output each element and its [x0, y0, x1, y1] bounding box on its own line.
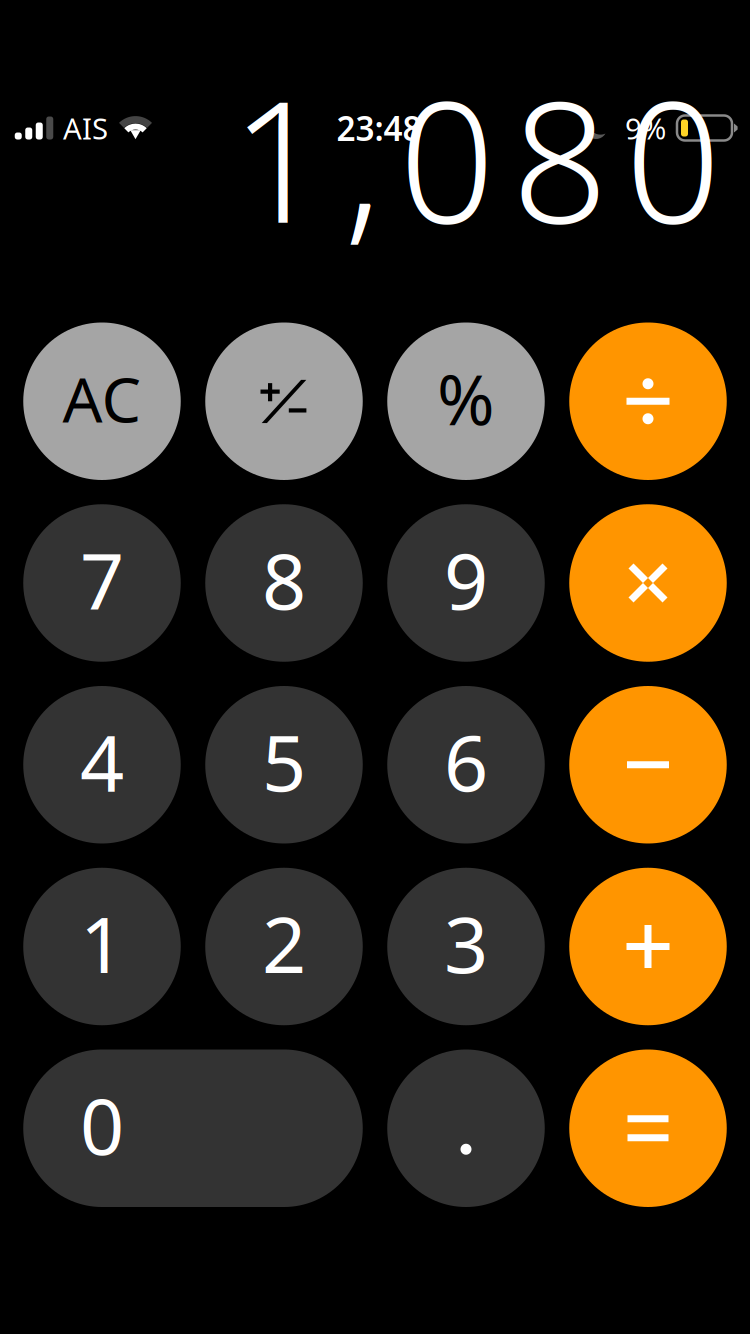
staticText: 4: [80, 710, 124, 813]
staticText: AC: [62, 357, 141, 440]
button[interactable]: 4: [23, 686, 181, 843]
button[interactable]: %: [387, 322, 545, 480]
staticText: AIS: [63, 108, 108, 147]
staticText: 8: [262, 528, 306, 631]
button[interactable]: 9: [387, 504, 545, 662]
staticText: 9%: [625, 108, 666, 147]
staticText: 7: [80, 528, 124, 631]
button[interactable]: 3: [387, 868, 545, 1025]
staticText: 3: [444, 892, 488, 994]
button[interactable]: 7: [23, 504, 181, 662]
staticText: 23:48: [336, 106, 421, 150]
staticText: 1,080: [231, 46, 721, 269]
button[interactable]: 5: [205, 686, 363, 843]
button[interactable]: Plus Minus: [205, 322, 363, 480]
staticText: 2: [262, 892, 306, 994]
button[interactable]: 6: [387, 686, 545, 843]
staticText: 5: [262, 710, 306, 813]
staticText: 6: [444, 710, 488, 813]
button[interactable]: Subtract: [569, 686, 727, 843]
staticText: 0: [80, 1073, 124, 1176]
button[interactable]: AC: [23, 322, 181, 480]
button[interactable]: Equals: [569, 1049, 727, 1207]
button[interactable]: 8: [205, 504, 363, 662]
button[interactable]: Multiply: [569, 504, 727, 662]
staticText: 1: [80, 892, 124, 994]
staticText: 9: [444, 528, 488, 631]
button[interactable]: Decimal point: [387, 1049, 545, 1207]
button[interactable]: 0: [23, 1049, 363, 1207]
button[interactable]: 2: [205, 868, 363, 1025]
staticText: %: [437, 352, 495, 444]
button[interactable]: 1: [23, 868, 181, 1025]
button[interactable]: Divide: [569, 322, 727, 480]
button[interactable]: Add: [569, 868, 727, 1025]
